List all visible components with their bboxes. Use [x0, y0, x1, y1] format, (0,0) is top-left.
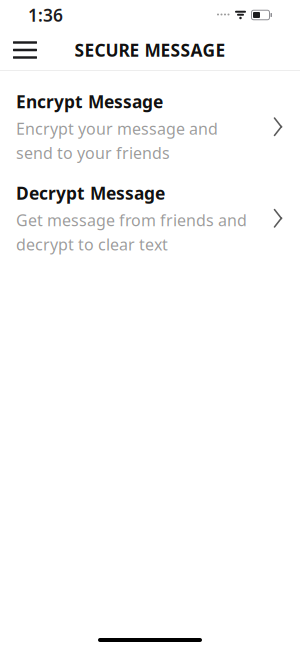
staticText: Encrypt your message and send to your fr…	[16, 118, 218, 163]
button[interactable]: Decrypt Message	[0, 172, 300, 264]
staticText: Decrypt Message	[16, 181, 165, 204]
staticText: Get message from friends and decrypt to …	[16, 209, 247, 255]
staticText: 1:36	[28, 3, 63, 26]
button[interactable]: Menu	[3, 30, 47, 70]
button[interactable]: Encrypt Message	[0, 81, 300, 172]
staticText: Encrypt Message	[16, 90, 163, 113]
staticText: SECURE MESSAGE	[74, 38, 225, 61]
